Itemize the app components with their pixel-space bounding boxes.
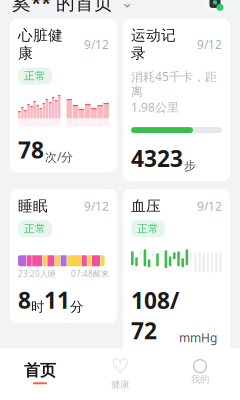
button[interactable]: 奚** 的首页 [12, 0, 133, 15]
staticText: 07:48醒来 [71, 268, 109, 279]
staticText: 9/12 [84, 198, 109, 214]
button[interactable]: 睡眠 [10, 189, 117, 323]
button[interactable]: 心脏健康 [10, 18, 117, 173]
staticText: 奚** 的首页 [12, 0, 113, 15]
staticText: 血压 [131, 197, 161, 215]
button[interactable]: 血氧 [10, 361, 117, 400]
staticText: 睡眠 [18, 197, 48, 215]
staticText: 心脏健康 [18, 26, 63, 62]
staticText: 次/分 [45, 149, 73, 165]
staticText: 时 [31, 299, 44, 315]
button[interactable]: 我的 [160, 360, 240, 385]
staticText: ♡ [111, 355, 129, 377]
staticText: 4323 [131, 143, 183, 173]
staticText: 分 [70, 299, 83, 315]
button[interactable]: 首页 [0, 361, 80, 384]
button[interactable]: 血压 [123, 189, 230, 353]
staticText: 消耗45千卡，距离 [131, 68, 217, 99]
staticText: 78 [18, 134, 44, 165]
button[interactable]: ♡ [80, 355, 160, 390]
staticText: ⌄ [121, 0, 133, 11]
staticText: 健康 [111, 378, 129, 390]
staticText: 9/12 [197, 198, 222, 214]
staticText: 血氧 [18, 369, 48, 387]
staticText: 步 [184, 158, 196, 173]
staticText: 9/12 [197, 370, 222, 386]
staticText: 正常 [24, 69, 46, 82]
staticText: 9/12 [84, 36, 109, 52]
staticText: 运动记录 [131, 26, 176, 62]
staticText: 正常 [24, 222, 46, 235]
staticText: 首页 [24, 361, 56, 380]
button[interactable]: 运动记录 [123, 18, 230, 181]
button[interactable]: 体温 [123, 361, 230, 400]
staticText: 23:20入睡 [18, 268, 56, 279]
staticText: 108/72 [131, 285, 179, 345]
staticText: mmHg [179, 329, 217, 345]
staticText: 正常 [137, 222, 159, 235]
staticText: 8 [18, 285, 31, 315]
staticText: 我的 [191, 374, 209, 385]
staticText: 11 [44, 285, 70, 315]
button[interactable]: Account [202, 0, 228, 15]
staticText: 9/12 [197, 36, 222, 52]
staticText: 1.98公里 [131, 99, 179, 115]
